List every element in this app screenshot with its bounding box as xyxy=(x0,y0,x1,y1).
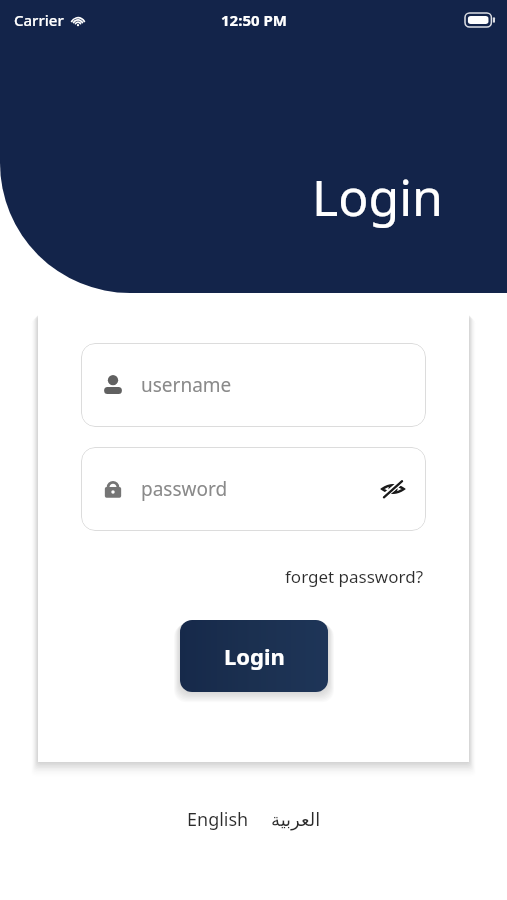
staticText: Carrier xyxy=(14,10,64,30)
staticText: username xyxy=(141,372,410,398)
button[interactable]: password xyxy=(81,447,426,531)
button[interactable]: English xyxy=(183,803,253,836)
button[interactable]: Show password xyxy=(376,472,410,506)
staticText: Login xyxy=(224,641,285,671)
staticText: 12:50 PM xyxy=(221,10,287,30)
button[interactable]: Login xyxy=(180,620,328,692)
staticText: password xyxy=(141,476,376,502)
staticText: Login xyxy=(312,163,443,231)
button[interactable]: العربية xyxy=(267,805,325,834)
button[interactable]: username xyxy=(81,343,426,427)
button[interactable]: forget password? xyxy=(283,561,426,592)
